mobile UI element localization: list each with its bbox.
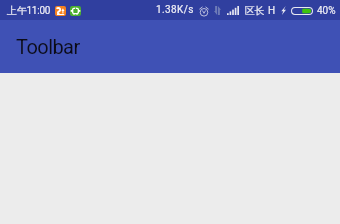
staticText: 上午11:00 [7, 4, 51, 17]
other: Notification [70, 6, 81, 16]
staticText: Toolbar [16, 35, 80, 58]
other: Alarm set [199, 6, 209, 16]
staticText: 1.38K/s [156, 4, 194, 16]
staticText: 区长 [245, 4, 264, 17]
button[interactable]: Toolbar [0, 20, 340, 73]
other: Charging [281, 6, 286, 15]
other: Cellular signal [227, 6, 239, 15]
other: Mobile data activity [214, 6, 221, 15]
other: Battery 40 percent [291, 7, 313, 15]
other: Notification [55, 6, 66, 16]
staticText: H [268, 5, 276, 17]
staticText: 40% [317, 5, 336, 17]
